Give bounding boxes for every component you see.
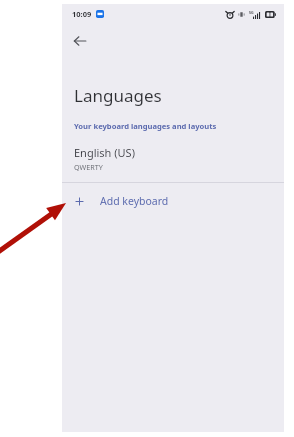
staticText: Your keyboard languages and layouts xyxy=(74,121,217,131)
button[interactable]: English (US) xyxy=(62,144,284,180)
staticText: Languages xyxy=(74,84,162,107)
staticText: 10:09 xyxy=(72,9,92,19)
staticText: QWERTY xyxy=(74,162,103,172)
staticText: 5G xyxy=(249,10,254,15)
staticText: English (US) xyxy=(74,145,135,160)
button[interactable]: Back xyxy=(67,28,93,54)
staticText: Add keyboard xyxy=(100,194,169,208)
button[interactable]: Add keyboard xyxy=(62,183,284,219)
